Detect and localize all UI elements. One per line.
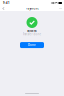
button[interactable]: Back	[1, 6, 6, 10]
staticText: Transfer done	[22, 32, 41, 36]
button[interactable]: Done	[20, 42, 44, 48]
staticText: Success!	[27, 29, 37, 32]
button[interactable]: More options	[58, 6, 63, 10]
staticText: Payment	[25, 7, 38, 10]
staticText: Done	[28, 43, 36, 47]
staticText: 9:41	[3, 1, 10, 5]
